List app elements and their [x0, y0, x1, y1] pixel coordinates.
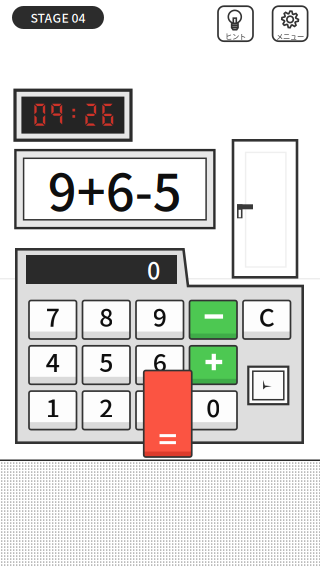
staticText: 4	[78, 9, 85, 26]
staticText: 6	[153, 343, 167, 379]
staticText: 0	[206, 389, 220, 424]
button[interactable]: 1	[29, 391, 76, 430]
button[interactable]: C	[243, 300, 290, 339]
staticText	[68, 9, 71, 26]
staticText: 2	[99, 389, 113, 424]
button[interactable]: 9	[136, 300, 183, 339]
staticText: 8	[99, 298, 113, 334]
button[interactable]: Plus	[189, 346, 237, 384]
staticText: ヒント	[225, 30, 246, 41]
button[interactable]: 5	[82, 346, 130, 384]
staticText: 09:26	[31, 100, 116, 127]
button[interactable]: 6	[136, 346, 183, 384]
button[interactable]: 4	[29, 346, 76, 384]
staticText: 4	[46, 343, 60, 379]
staticText: S	[30, 9, 37, 26]
staticText: G	[52, 9, 61, 26]
staticText: 0	[147, 252, 160, 286]
button[interactable]: 3	[136, 391, 183, 430]
staticText: メニュー	[276, 30, 304, 41]
staticText: 9	[153, 298, 167, 334]
button[interactable]: 8	[82, 300, 130, 339]
button[interactable]: 2	[82, 391, 130, 430]
staticText: T	[37, 9, 44, 26]
button[interactable]: Equals	[144, 370, 192, 457]
staticText: 9+6-5	[48, 152, 182, 225]
staticText: A	[44, 9, 52, 26]
staticText: C	[259, 298, 275, 334]
staticText: 7	[46, 298, 60, 334]
staticText: E	[61, 9, 68, 26]
button[interactable]: ヒント	[218, 6, 253, 41]
button[interactable]: 0	[189, 391, 237, 430]
staticText: 5	[99, 343, 113, 379]
staticText: 0	[71, 9, 78, 26]
button[interactable]: Place tile	[248, 367, 288, 404]
staticText: 1	[46, 389, 60, 424]
button[interactable]: S	[12, 6, 104, 29]
button[interactable]: Minus	[189, 300, 237, 339]
button[interactable]: メニュー	[273, 6, 308, 41]
button[interactable]: 7	[29, 300, 76, 339]
